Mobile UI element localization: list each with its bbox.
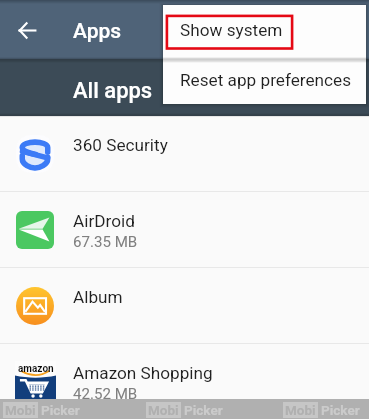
staticText: Mobi <box>5 402 36 418</box>
button[interactable]: Show system <box>163 5 366 54</box>
staticText: amazon <box>18 363 54 375</box>
staticText: Picker <box>41 402 80 418</box>
staticText: Album <box>73 287 123 307</box>
staticText: Mobi <box>285 402 316 418</box>
staticText: 360 Security <box>73 135 168 155</box>
button[interactable]: Reset app preferences <box>163 55 366 104</box>
button[interactable]: AirDroid <box>0 192 369 267</box>
staticText: 42.52 MB <box>73 385 138 403</box>
staticText: AirDroid <box>73 211 135 231</box>
button[interactable]: Album <box>0 268 369 343</box>
staticText: Amazon Shopping <box>73 363 213 383</box>
staticText: Show system <box>180 20 283 40</box>
staticText: Picker <box>321 402 360 418</box>
button[interactable]: Back <box>9 12 45 48</box>
staticText: All apps <box>73 78 153 104</box>
button[interactable]: 360 Security <box>0 116 369 191</box>
staticText: 67.35 MB <box>73 233 138 251</box>
staticText: Reset app preferences <box>180 70 352 90</box>
staticText: Picker <box>184 402 223 418</box>
button[interactable]: amazon <box>0 344 369 419</box>
staticText: Apps <box>73 19 122 44</box>
staticText: Mobi <box>148 402 179 418</box>
